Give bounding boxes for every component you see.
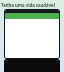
staticText: Tenha uma vida saudável bbox=[1, 2, 64, 8]
